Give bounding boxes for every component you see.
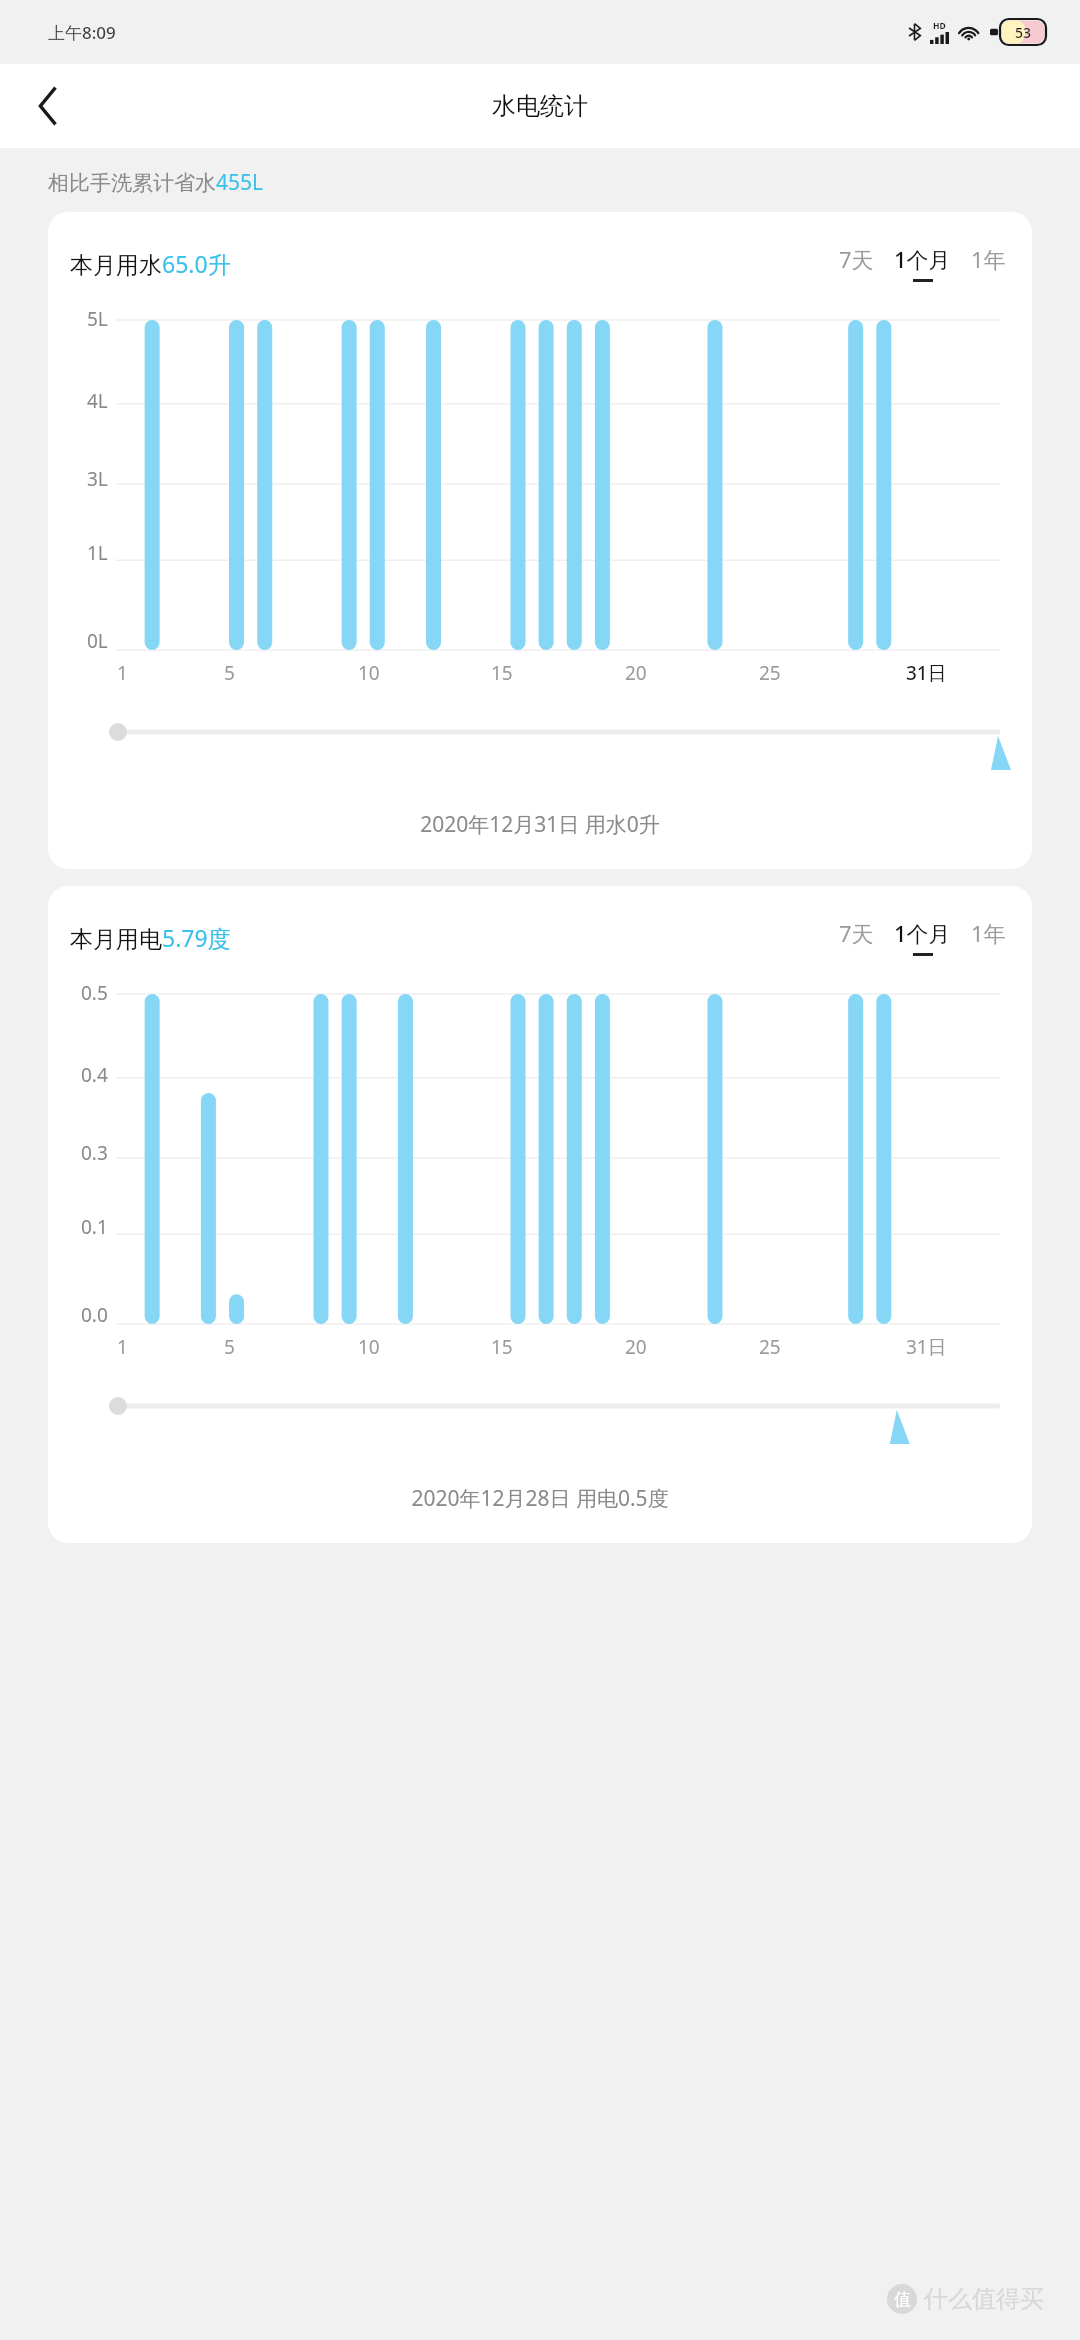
button[interactable] [48,1392,1032,1470]
staticText: 水电统计 [492,91,588,121]
staticText: 0L [87,628,108,654]
staticText: 5 [224,1334,235,1360]
staticText: 5L [87,306,108,332]
staticText: 15 [491,660,513,686]
staticText: 0.0 [81,1302,108,1328]
staticText: 5 [224,660,235,686]
staticText: 什么值得买 [924,2284,1044,2314]
staticText: 1年 [971,918,1006,948]
staticText: 7天 [839,918,874,948]
button[interactable]: 1个月 [890,242,955,284]
staticText: 31日 [906,1334,947,1360]
staticText: 10 [358,1334,380,1360]
staticText: 53 [1015,23,1032,42]
staticText: 20 [625,660,647,686]
staticText: 25 [759,660,781,686]
button[interactable]: 1年 [967,916,1010,958]
staticText: 本月用水65.0升 [70,248,231,279]
staticText: 值 [894,2289,911,2310]
staticText: 20 [625,1334,647,1360]
staticText: 7天 [839,244,874,274]
staticText: 相比手洗累计省水455L [48,168,264,197]
staticText: 1 [117,1334,128,1360]
staticText: 0.5 [81,980,108,1006]
staticText: 10 [358,660,380,686]
button[interactable]: 7天 [835,242,878,284]
staticText: 2020年12月31日 用水0升 [48,810,1032,839]
staticText: 0.1 [81,1214,108,1240]
button[interactable]: 1个月 [890,916,955,958]
staticText: 31日 [906,660,947,686]
button[interactable]: 7天 [835,916,878,958]
staticText: 1年 [971,244,1006,274]
button[interactable] [48,718,1032,796]
staticText: 上午8:09 [48,21,116,44]
staticText: 1个月 [894,918,951,948]
staticText: 1个月 [894,244,951,274]
button[interactable]: 1年 [967,242,1010,284]
button[interactable]: Back [20,78,76,134]
staticText: 15 [491,1334,513,1360]
staticText: 2020年12月28日 用电0.5度 [48,1484,1032,1513]
staticText: HD [933,20,946,32]
staticText: 3L [87,466,108,492]
staticText: 25 [759,1334,781,1360]
staticText: 1 [117,660,128,686]
staticText: 1L [87,540,108,566]
staticText: 0.3 [81,1140,108,1166]
staticText: 0.4 [81,1062,108,1088]
staticText: 4L [87,388,108,414]
staticText: 本月用电5.79度 [70,922,231,953]
